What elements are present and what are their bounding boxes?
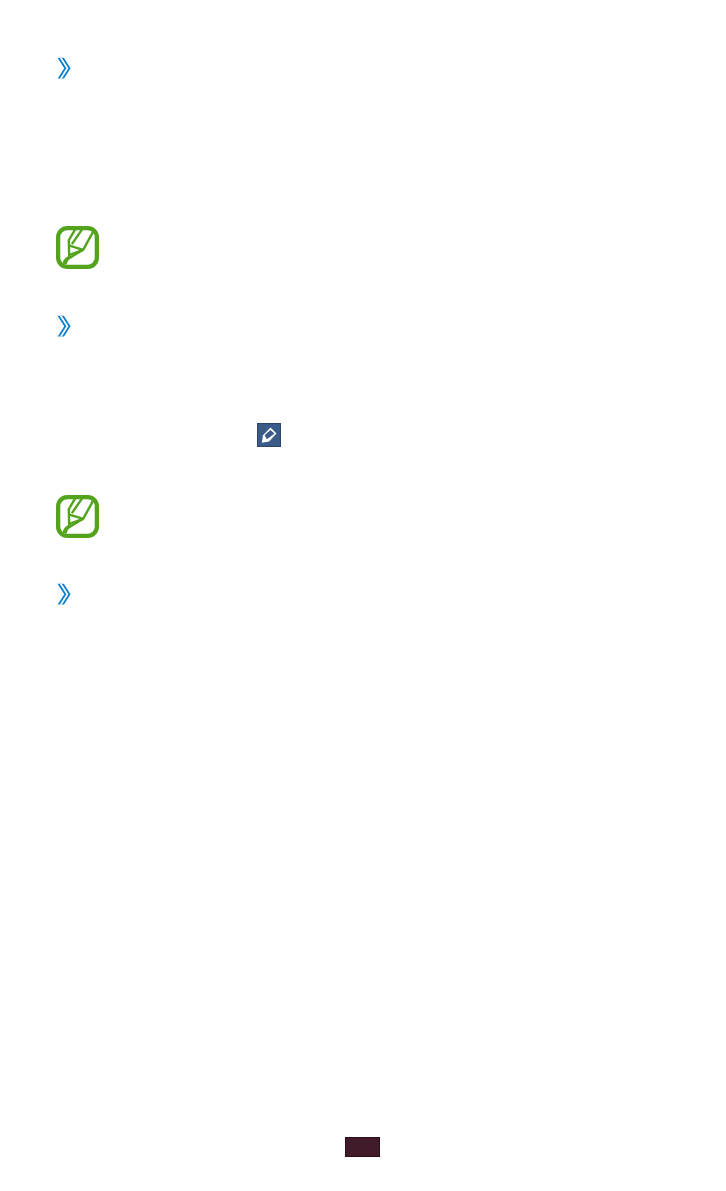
button[interactable]: Next <box>56 56 72 80</box>
button[interactable]: Next <box>56 582 72 606</box>
button[interactable]: Next <box>56 314 72 338</box>
button[interactable]: Action memo <box>56 226 99 269</box>
button[interactable]: Edit <box>257 423 281 447</box>
button[interactable]: Colour swatch <box>345 1137 380 1157</box>
button[interactable]: Action memo <box>56 495 99 538</box>
